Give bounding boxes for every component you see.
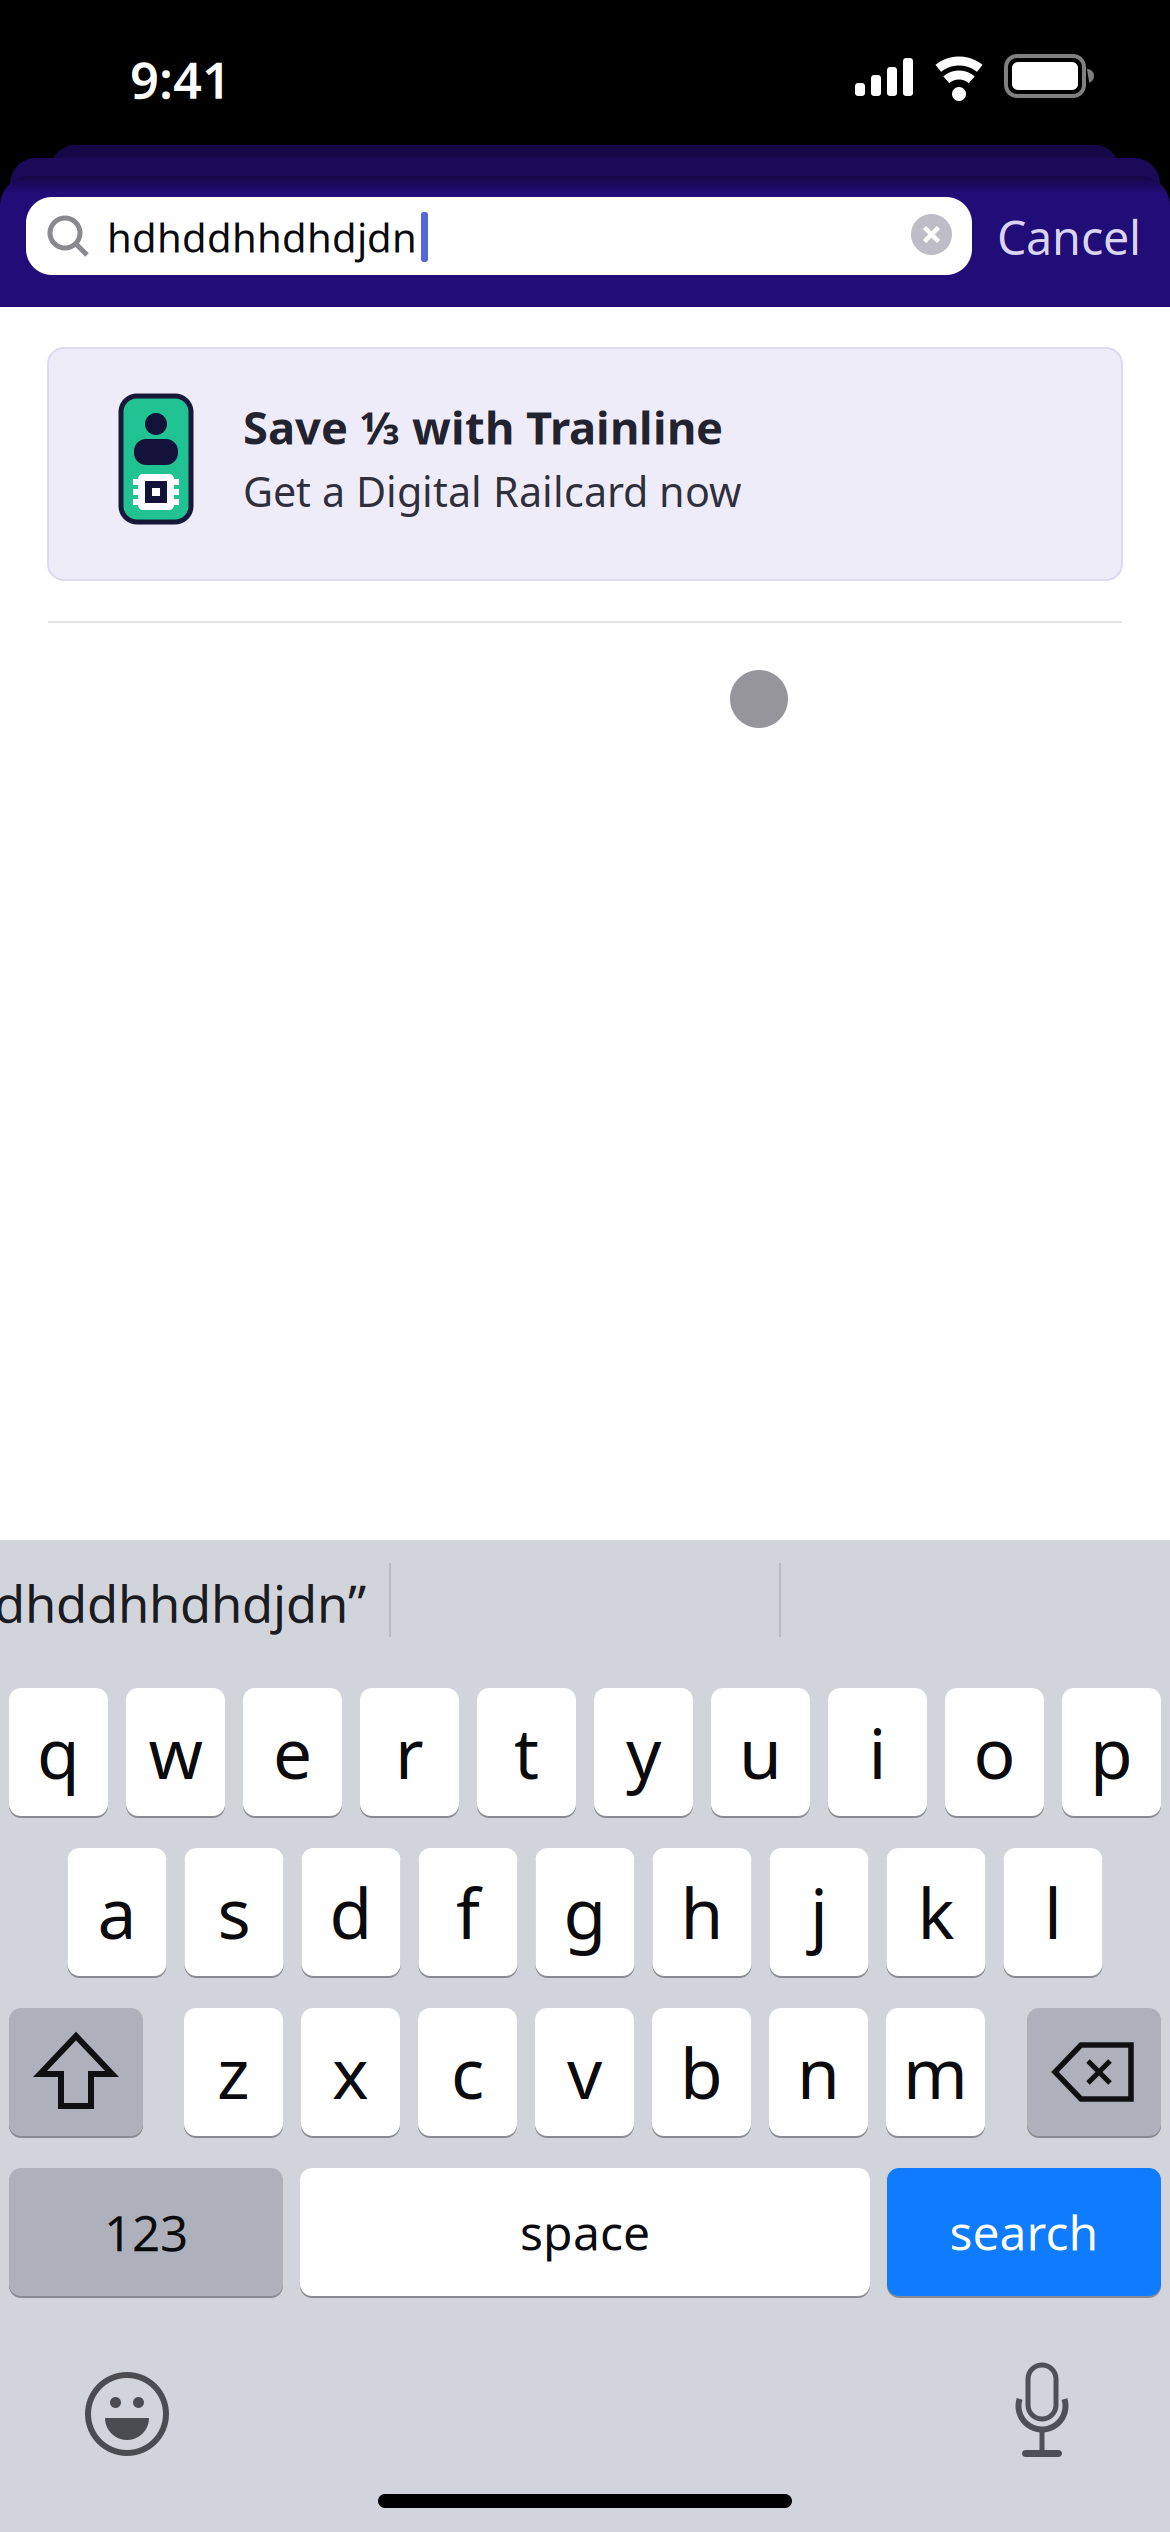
staticText: k xyxy=(917,1866,954,1958)
staticText: s xyxy=(217,1866,250,1958)
staticText: x xyxy=(332,2026,369,2118)
staticText: r xyxy=(395,1706,424,1798)
button[interactable]: h xyxy=(652,1846,751,1978)
staticText: e xyxy=(273,1706,312,1798)
button[interactable]: x xyxy=(301,2006,400,2138)
staticText: a xyxy=(97,1866,136,1958)
staticText: 9:41 xyxy=(130,45,231,113)
button[interactable]: y xyxy=(594,1686,693,1818)
staticText: v xyxy=(567,2026,602,2118)
staticText: q xyxy=(37,1706,80,1798)
button[interactable]: i xyxy=(828,1686,927,1818)
button[interactable]: g xyxy=(535,1846,634,1978)
button[interactable]: dhddhhdhdjdn” xyxy=(0,1570,554,1636)
staticText: f xyxy=(456,1866,480,1958)
staticText: n xyxy=(797,2026,840,2118)
staticText: o xyxy=(973,1706,1015,1798)
staticText: p xyxy=(1090,1706,1133,1798)
staticText: z xyxy=(217,2026,250,2118)
button[interactable]: a xyxy=(67,1846,166,1978)
button[interactable]: Shift xyxy=(9,2006,143,2138)
staticText: Save ⅓ with Trainline xyxy=(243,397,723,457)
staticText: u xyxy=(739,1706,782,1798)
button[interactable]: k xyxy=(886,1846,985,1978)
button[interactable]: t xyxy=(477,1686,576,1818)
button[interactable]: w xyxy=(126,1686,225,1818)
staticText: w xyxy=(148,1706,202,1798)
staticText: l xyxy=(1044,1866,1062,1958)
staticText: b xyxy=(680,2026,723,2118)
staticText: Cancel xyxy=(997,206,1141,268)
staticText: i xyxy=(868,1706,886,1798)
staticText: 123 xyxy=(104,2199,188,2265)
button[interactable]: n xyxy=(769,2006,868,2138)
staticText: space xyxy=(520,2200,650,2264)
button[interactable]: r xyxy=(360,1686,459,1818)
button[interactable]: Dictation xyxy=(1011,2362,1073,2466)
button[interactable]: Search xyxy=(26,197,972,275)
button[interactable]: search xyxy=(887,2166,1161,2298)
button[interactable]: m xyxy=(886,2006,985,2138)
button[interactable]: z xyxy=(184,2006,283,2138)
button[interactable]: Clear text xyxy=(911,214,952,255)
staticText: search xyxy=(949,2200,1098,2264)
button[interactable]: 123 xyxy=(9,2166,283,2298)
button[interactable]: Cancel xyxy=(997,206,1170,268)
staticText: Get a Digital Railcard now xyxy=(243,464,741,518)
button[interactable]: space xyxy=(300,2166,870,2298)
staticText: h xyxy=(680,1866,723,1958)
button[interactable]: s xyxy=(184,1846,283,1978)
staticText: c xyxy=(451,2026,484,2118)
staticText: t xyxy=(514,1706,539,1798)
button[interactable]: c xyxy=(418,2006,517,2138)
staticText: j xyxy=(810,1866,828,1958)
button[interactable]: p xyxy=(1062,1686,1161,1818)
button[interactable]: j xyxy=(769,1846,868,1978)
button[interactable]: l xyxy=(1003,1846,1102,1978)
button[interactable]: d xyxy=(301,1846,400,1978)
staticText: hdhddhhdhdjdn xyxy=(107,210,417,263)
button[interactable]: Emoji xyxy=(85,2372,169,2456)
button[interactable]: v xyxy=(535,2006,634,2138)
button[interactable]: e xyxy=(243,1686,342,1818)
button[interactable]: b xyxy=(652,2006,751,2138)
button[interactable]: f xyxy=(418,1846,517,1978)
staticText: m xyxy=(903,2026,968,2118)
button[interactable]: o xyxy=(945,1686,1044,1818)
staticText: y xyxy=(626,1706,661,1798)
staticText: d xyxy=(329,1866,372,1958)
button[interactable]: Delete xyxy=(1027,2006,1161,2138)
button[interactable]: Save ⅓ with Trainline xyxy=(48,348,1122,580)
staticText: g xyxy=(563,1866,606,1958)
staticText: dhddhhdhdjdn” xyxy=(0,1569,366,1637)
button[interactable]: q xyxy=(9,1686,108,1818)
button[interactable]: u xyxy=(711,1686,810,1818)
